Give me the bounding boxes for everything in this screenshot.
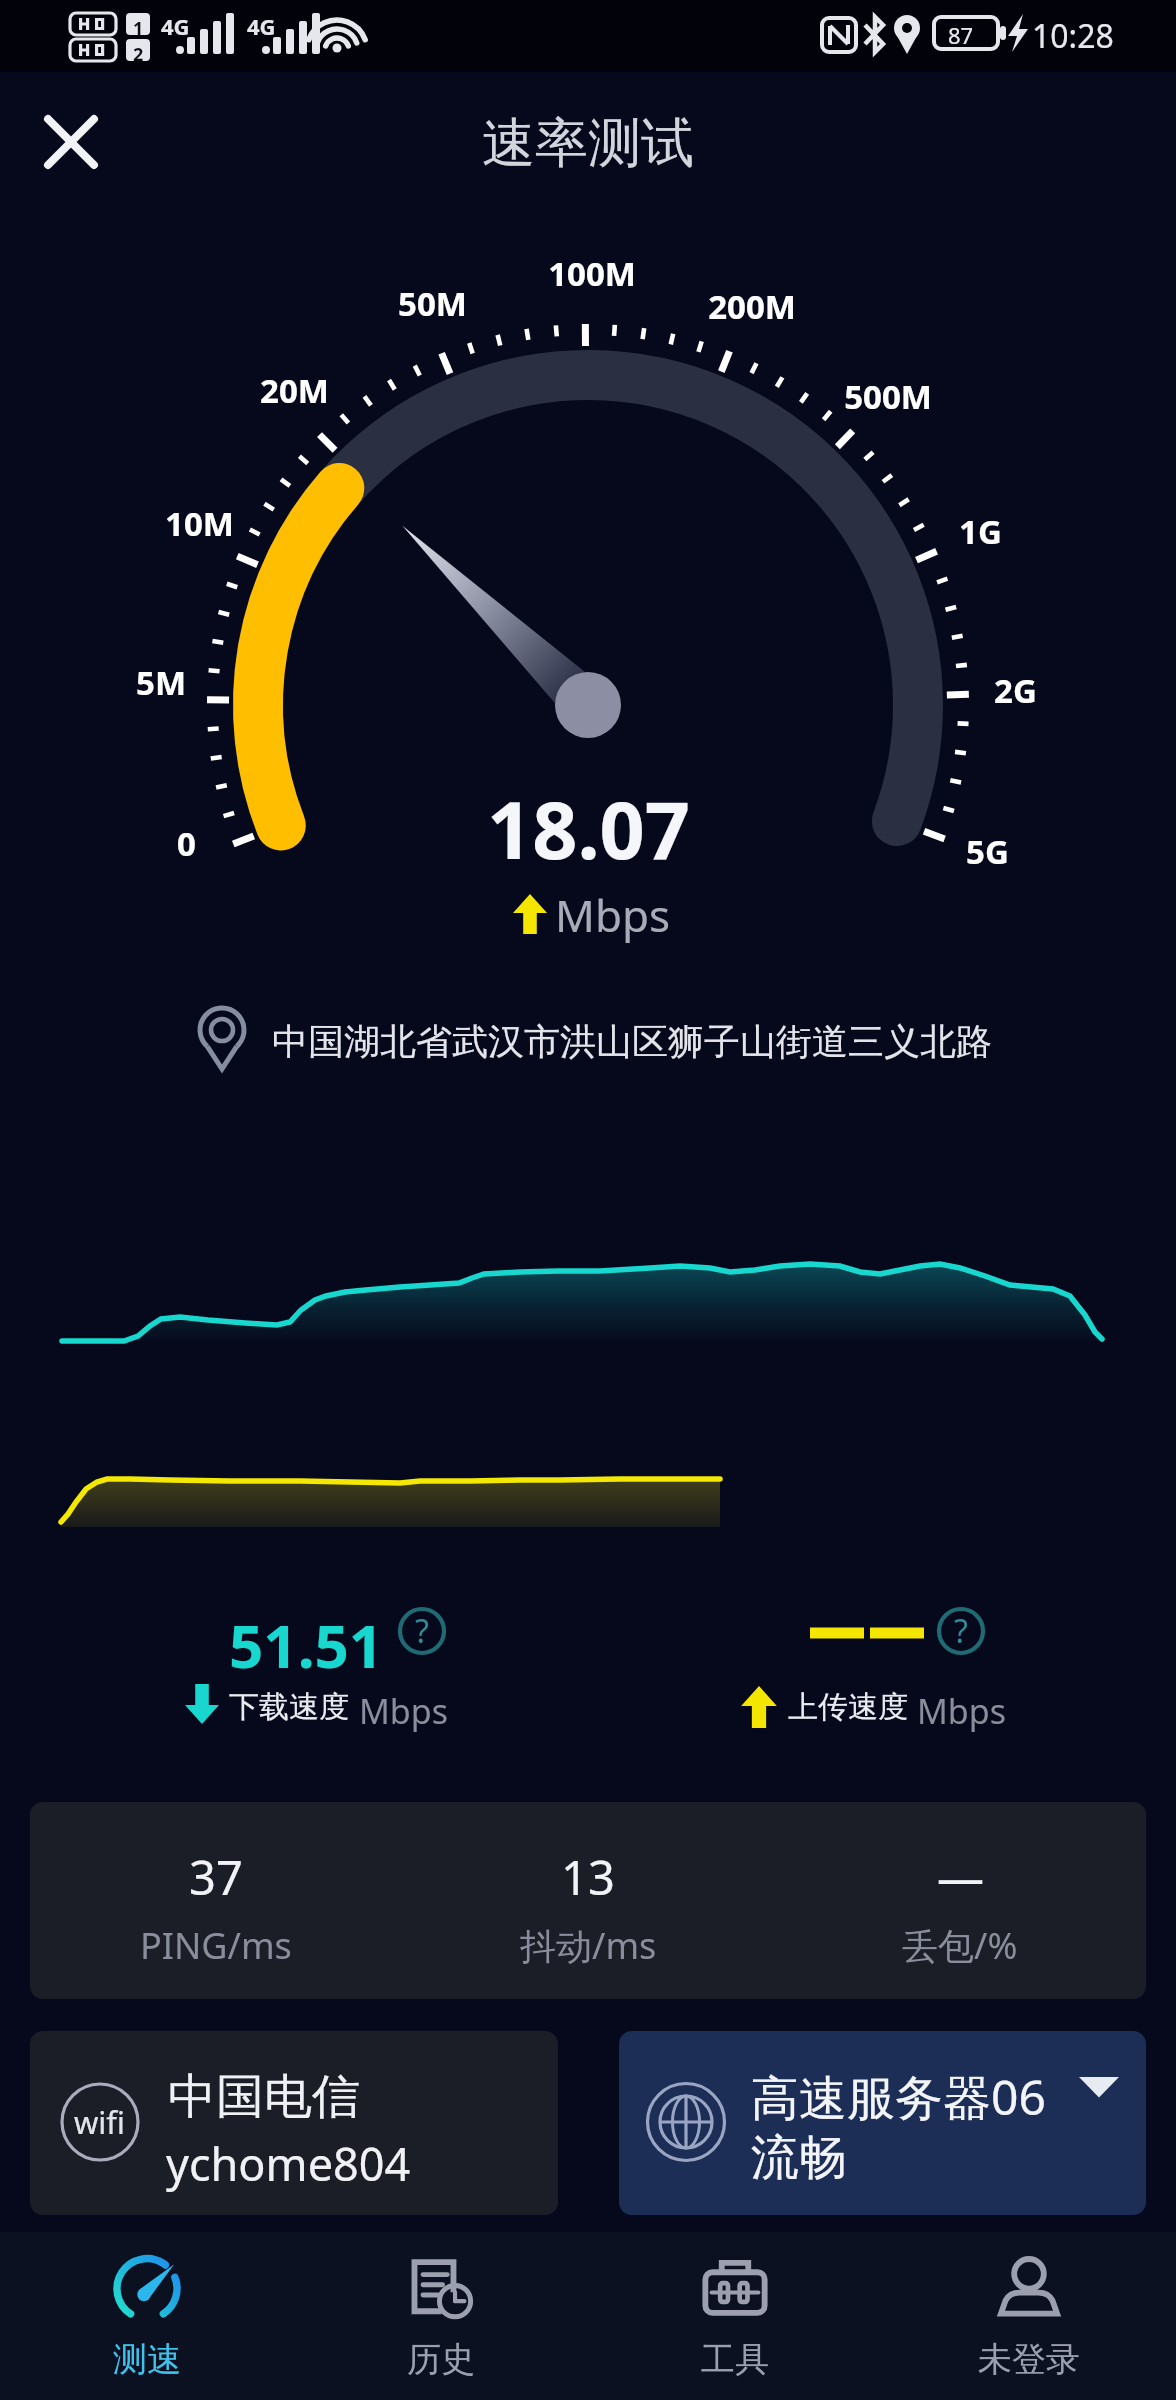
staticText: Mbps (917, 1688, 1006, 1734)
staticText: 未登录 (978, 2338, 1080, 2381)
staticText: 10:28 (1032, 14, 1114, 58)
button[interactable]: 历史 (294, 2232, 588, 2400)
staticText: 1 (133, 16, 144, 41)
staticText: ? (415, 1609, 429, 1653)
staticText: 50M (398, 281, 467, 326)
button[interactable]: Upload speed help (934, 1604, 988, 1658)
staticText: 100M (548, 251, 636, 296)
staticText: 87 (948, 20, 974, 50)
staticText: 高速服务器06 (751, 2064, 1046, 2130)
staticText: 测速 (113, 2338, 181, 2381)
staticText: 历史 (407, 2338, 475, 2381)
staticText: 中国湖北省武汉市洪山区狮子山街道三义北路 (272, 1019, 992, 1064)
staticText: 13 (561, 1845, 615, 1909)
button[interactable]: 37 (30, 1802, 1146, 1999)
staticText: 丢包/% (902, 1921, 1018, 1970)
button[interactable]: 测速 (0, 2232, 294, 2400)
staticText: 2 (133, 42, 144, 67)
staticText: 4G (247, 11, 276, 41)
button[interactable]: Close (26, 97, 116, 187)
staticText: 37 (189, 1845, 243, 1909)
staticText: 速率测试 (482, 110, 694, 177)
staticText: 上传速度 (788, 1688, 908, 1726)
staticText: 下载速度 (229, 1688, 349, 1726)
staticText: ? (954, 1609, 968, 1653)
staticText: 5G (966, 829, 1009, 874)
staticText: ychome804 (166, 2133, 411, 2194)
staticText: — (937, 1845, 984, 1909)
staticText: 1G (959, 509, 1002, 554)
button[interactable]: wifi (30, 2031, 558, 2215)
staticText: Mbps (555, 885, 671, 945)
staticText: PING/ms (140, 1921, 292, 1970)
staticText: 4G (161, 11, 190, 41)
staticText: 51.51 (229, 1604, 384, 1686)
button[interactable]: 未登录 (882, 2232, 1176, 2400)
button[interactable]: 工具 (588, 2232, 882, 2400)
button[interactable]: Download speed help (395, 1604, 449, 1658)
button[interactable]: 高速服务器06 (619, 2031, 1146, 2215)
staticText: 工具 (701, 2338, 769, 2381)
staticText: 2G (994, 668, 1037, 713)
staticText: 20M (260, 368, 329, 413)
staticText: 500M (844, 374, 932, 419)
staticText: 10M (165, 501, 234, 546)
staticText: Mbps (359, 1688, 448, 1734)
staticText: 流畅 (751, 2128, 847, 2188)
staticText: 200M (708, 284, 796, 329)
staticText: wifi (74, 2101, 126, 2143)
staticText: 0 (177, 821, 196, 866)
staticText: 5M (136, 660, 186, 705)
staticText: 抖动/ms (520, 1921, 657, 1970)
staticText: 18.07 (487, 775, 690, 883)
staticText: 中国电信 (168, 2067, 360, 2127)
